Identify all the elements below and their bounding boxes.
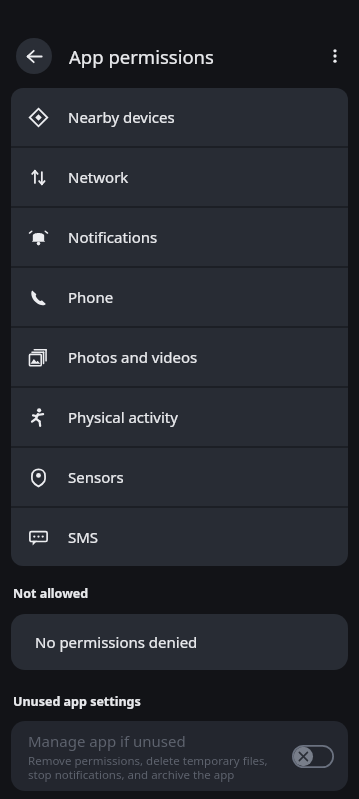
button[interactable]: Phone [11,268,348,326]
staticText: Physical activity [68,407,178,427]
staticText: App permissions [69,44,214,69]
staticText: Notifications [68,227,158,247]
button[interactable]: Sensors [11,448,348,506]
staticText: Network [68,167,129,187]
staticText: Unused app settings [13,693,141,710]
button[interactable]: Notifications [11,208,348,266]
staticText: Nearby devices [68,107,175,127]
button[interactable]: Manage app if unused toggle, off [292,745,334,768]
staticText: No permissions denied [35,632,198,652]
staticText: Not allowed [13,585,89,602]
button[interactable]: SMS [11,508,348,566]
button[interactable]: Back [16,38,52,74]
staticText: SMS [68,527,99,547]
button[interactable]: More options [315,36,355,76]
button[interactable]: No permissions denied [11,614,348,670]
staticText: Manage app if unused [28,731,186,751]
staticText: Phone [68,287,114,307]
staticText: Remove permissions, delete temporary fil… [28,753,284,782]
staticText: Photos and videos [68,347,198,367]
button[interactable]: Physical activity [11,388,348,446]
button[interactable]: Network [11,148,348,206]
button[interactable]: Manage app if unused [11,721,348,791]
button[interactable]: Nearby devices [11,88,348,146]
staticText: Sensors [68,467,124,487]
button[interactable]: Photos and videos [11,328,348,386]
